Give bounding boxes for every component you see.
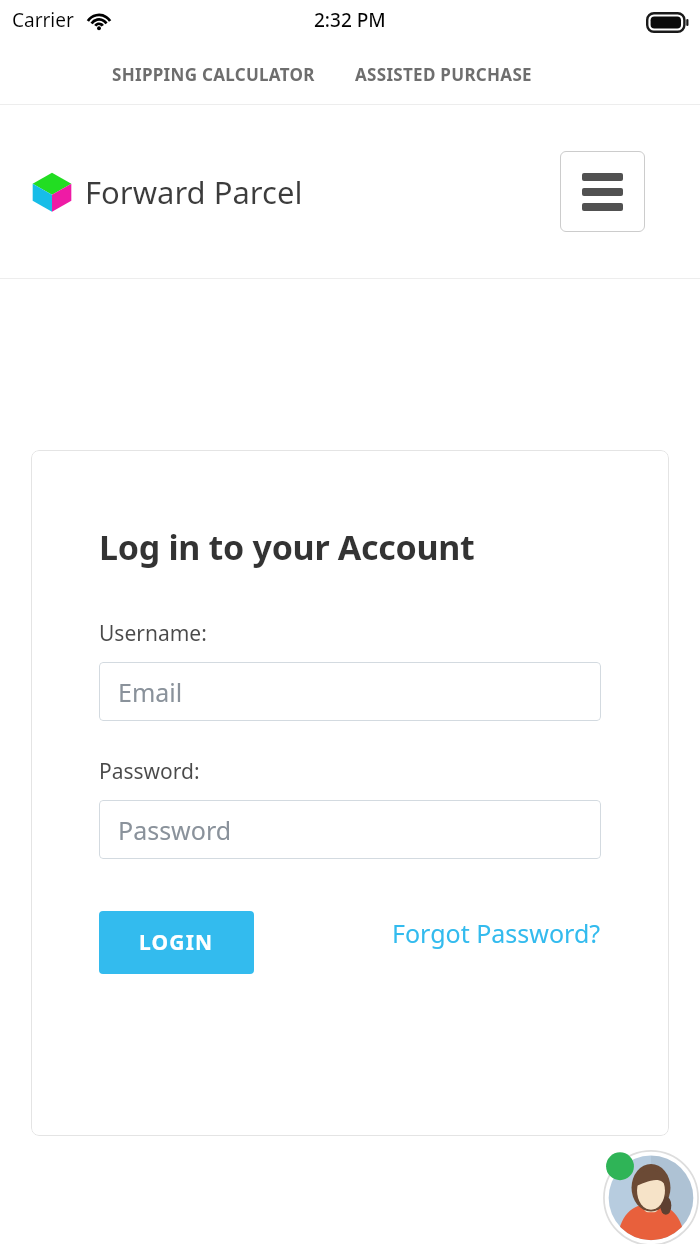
button[interactable]: Password — [99, 800, 601, 859]
staticText: Carrier — [12, 7, 74, 33]
staticText: Password — [118, 813, 232, 847]
button[interactable]: SHIPPING CALCULATOR — [112, 55, 315, 94]
staticText: LOGIN — [139, 928, 214, 957]
staticText: Forward Parcel — [85, 171, 303, 213]
button[interactable]: Open menu — [560, 151, 645, 232]
button[interactable]: Forgot Password? — [392, 916, 601, 950]
button[interactable]: ASSISTED PURCHASE — [355, 55, 532, 94]
button[interactable]: LOGIN — [99, 911, 254, 974]
button[interactable]: Chat with support — [600, 1148, 700, 1244]
staticText: Email — [118, 675, 183, 709]
staticText: ASSISTED PURCHASE — [355, 63, 532, 86]
button[interactable]: Forward Parcel — [31, 170, 303, 214]
staticText: Log in to your Account — [99, 524, 475, 570]
staticText: Password: — [99, 757, 200, 786]
staticText: SHIPPING CALCULATOR — [112, 63, 315, 86]
button[interactable]: Email — [99, 662, 601, 721]
staticText: 2:32 PM — [314, 7, 386, 33]
staticText: Forgot Password? — [392, 916, 601, 950]
staticText: Username: — [99, 619, 207, 648]
